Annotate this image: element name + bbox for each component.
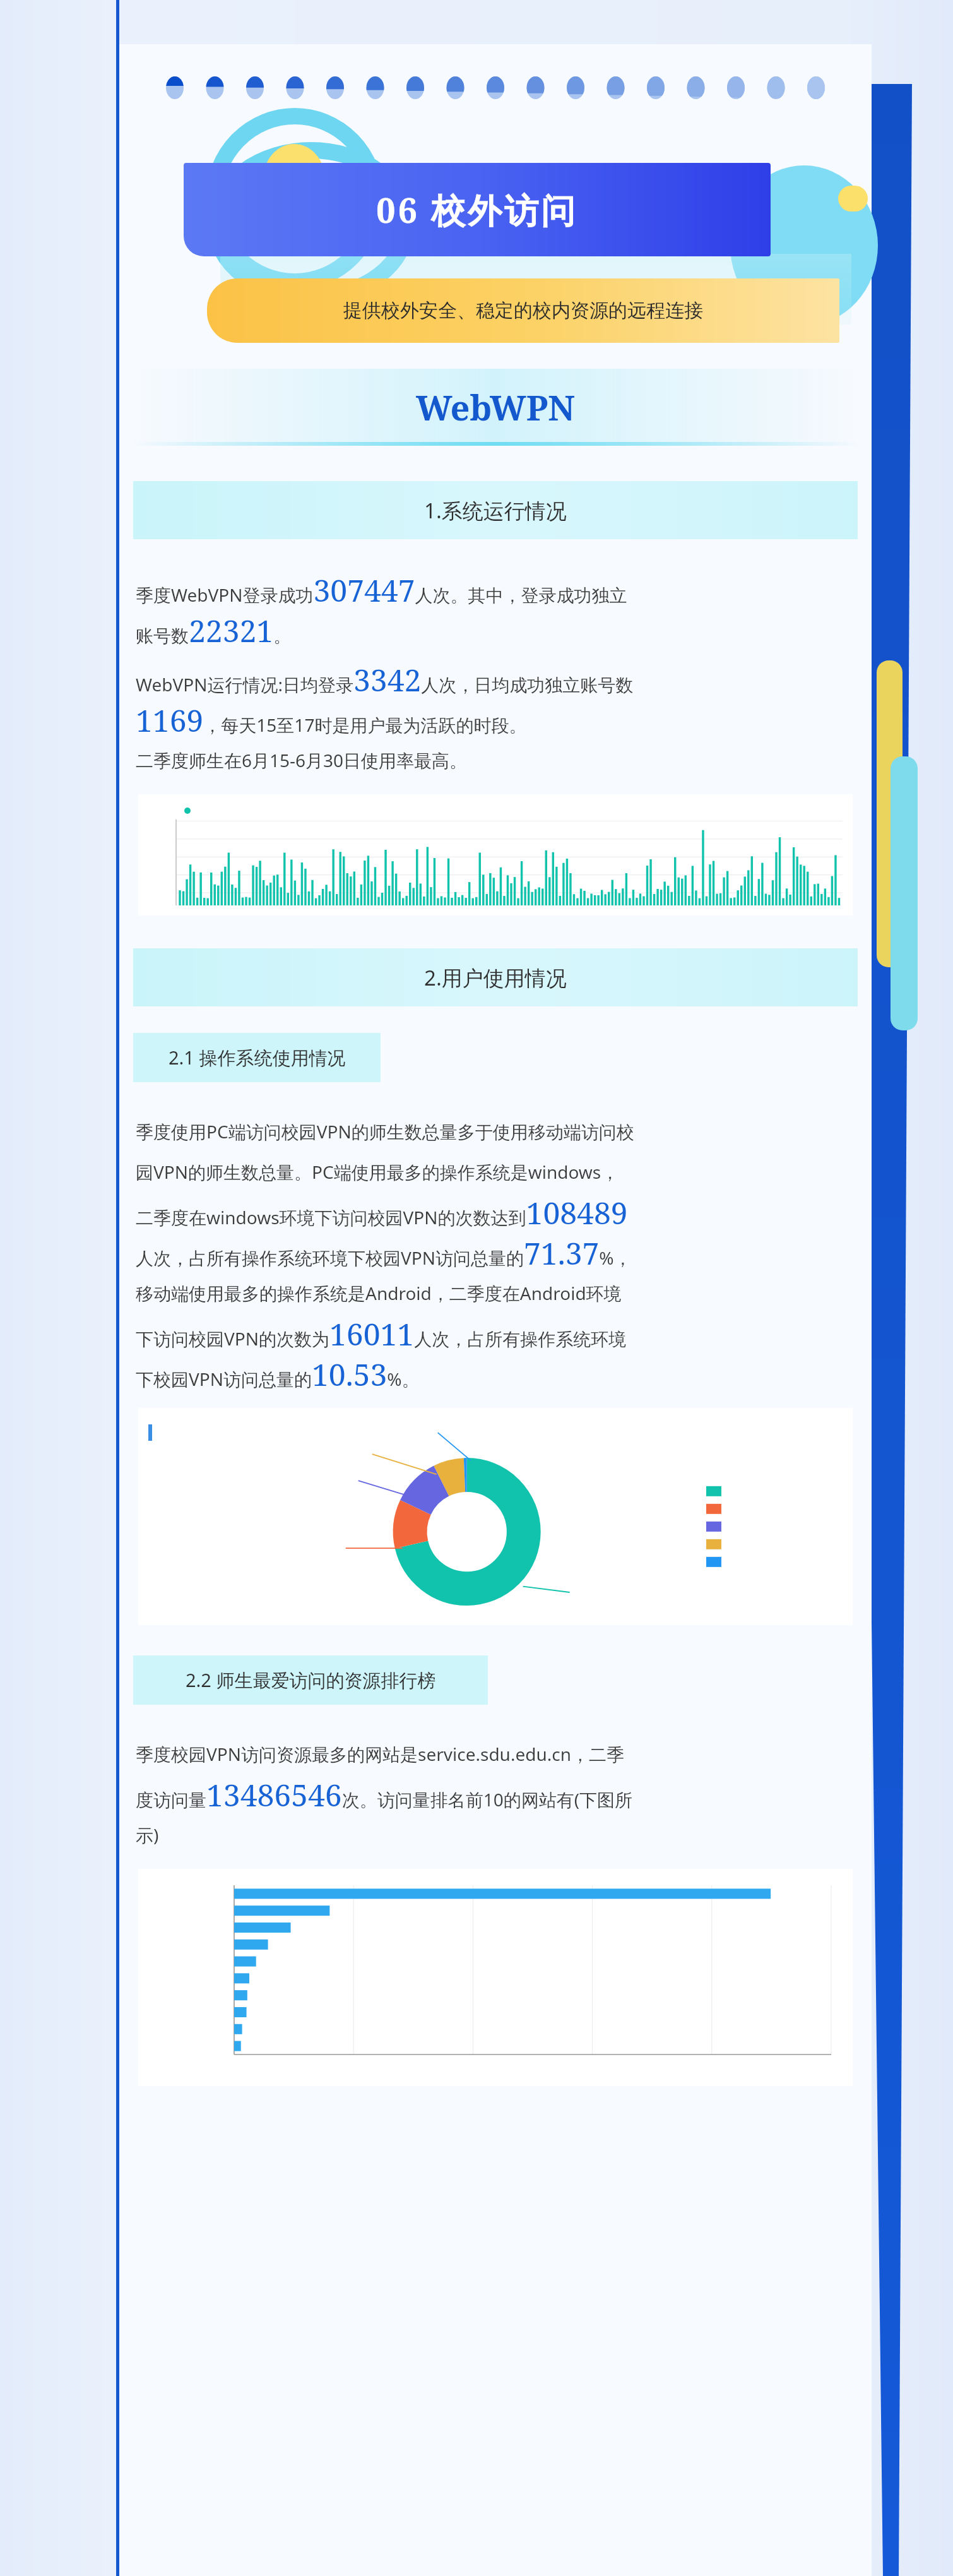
staticText: 二季度在windows环境下访问校园VPN的次数达到108489 xyxy=(136,1192,628,1232)
staticText: 移动端使用最多的操作系统是Android，二季度在Android环境 xyxy=(136,1281,622,1305)
other: Spiral binding xyxy=(175,71,816,105)
button[interactable]: 提供校外安全、稳定的校内资源的远程连接 xyxy=(207,278,839,343)
staticText: 示) xyxy=(136,1823,159,1847)
staticText: 二季度师生在6月15-6月30日使用率最高。 xyxy=(136,748,468,772)
button[interactable]: 2.用户使用情况 xyxy=(133,948,858,1006)
staticText: WebWPN xyxy=(416,384,575,431)
staticText: WebVPN运行情况:日均登录3342人次，日均成功独立账号数 xyxy=(136,659,634,700)
button[interactable]: 2.1 操作系统使用情况 xyxy=(133,1033,381,1082)
button[interactable]: 2.2 师生最爱访问的资源排行榜 xyxy=(133,1655,488,1705)
staticText: 06 校外访问 xyxy=(376,186,578,233)
staticText: 园VPN的师生数总量。PC端使用最多的操作系统是windows， xyxy=(136,1160,619,1184)
staticText: 1.系统运行情况 xyxy=(424,496,567,525)
staticText: 下访问校园VPN的次数为16011人次，占所有操作系统环境 xyxy=(136,1313,627,1354)
staticText: 2.1 操作系统使用情况 xyxy=(169,1045,346,1070)
staticText: 2.用户使用情况 xyxy=(424,963,567,992)
staticText: 下校园VPN访问总量的10.53%。 xyxy=(136,1354,420,1394)
staticText: 季度WebVPN登录成功307447人次。其中，登录成功独立 xyxy=(136,569,627,610)
staticText: 人次，占所有操作系统环境下校园VPN访问总量的71.37%， xyxy=(136,1232,632,1273)
button[interactable]: 1.系统运行情况 xyxy=(133,481,858,539)
button[interactable]: 06 校外访问 xyxy=(184,163,771,256)
staticText: 度访问量13486546次。访问量排名前10的网站有(下图所 xyxy=(136,1774,633,1815)
staticText: 账号数22321。 xyxy=(136,610,292,650)
staticText: 季度使用PC端访问校园VPN的师生数总量多于使用移动端访问校 xyxy=(136,1119,634,1143)
staticText: 1169，每天15至17时是用户最为活跃的时段。 xyxy=(136,700,527,740)
staticText: 季度校园VPN访问资源最多的网站是service.sdu.edu.cn，二季 xyxy=(136,1742,624,1766)
staticText: 2.2 师生最爱访问的资源排行榜 xyxy=(186,1667,436,1693)
staticText: 提供校外安全、稳定的校内资源的远程连接 xyxy=(343,299,703,323)
